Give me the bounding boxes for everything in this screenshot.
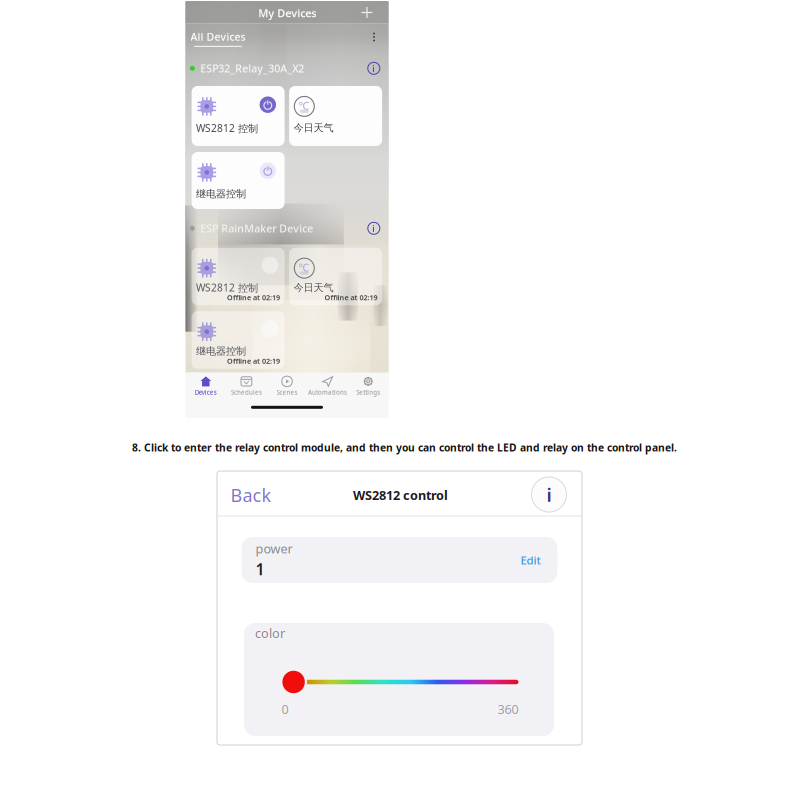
staticText: ℃ xyxy=(299,260,310,274)
staticText: color xyxy=(255,624,285,642)
staticText: Offline at 02:19 xyxy=(325,293,378,302)
button[interactable]: Device info xyxy=(368,222,380,234)
staticText: All Devices xyxy=(190,30,245,44)
button[interactable]: More options xyxy=(369,29,379,45)
staticText: i xyxy=(372,62,375,74)
button[interactable]: WS2812 控制 xyxy=(192,86,285,146)
staticText: 1 xyxy=(255,558,264,580)
button[interactable]: Scenes xyxy=(267,373,307,397)
button[interactable]: Hue handle xyxy=(280,668,307,695)
staticText: WS2812 control xyxy=(353,486,448,504)
staticText: WS2812 控制 xyxy=(196,121,258,135)
button[interactable]: Automations xyxy=(307,373,348,397)
button[interactable]: WS2812 控制 xyxy=(192,248,285,305)
button[interactable]: 继电器控制 xyxy=(192,311,285,369)
staticText: Offline at 02:19 xyxy=(227,356,280,366)
staticText: Scenes xyxy=(276,388,297,396)
staticText: Edit xyxy=(520,552,540,568)
button[interactable]: Device info xyxy=(368,62,380,74)
staticText: Schedules xyxy=(231,388,262,396)
staticText: Offline at 02:19 xyxy=(227,293,280,302)
staticText: 8. Click to enter the relay control modu… xyxy=(132,440,677,454)
staticText: My Devices xyxy=(258,6,316,20)
staticText: i xyxy=(372,222,375,234)
button[interactable]: Devices xyxy=(185,373,226,397)
staticText: 0 xyxy=(281,700,288,718)
staticText: Settings xyxy=(356,388,380,396)
staticText: Automations xyxy=(308,388,347,396)
staticText: 今日天气 xyxy=(294,281,334,294)
button[interactable]: Add device xyxy=(358,4,375,21)
staticText: Devices xyxy=(195,388,217,396)
button[interactable]: Edit xyxy=(517,549,543,571)
button[interactable]: ℃ xyxy=(289,248,382,305)
staticText: ℃ xyxy=(299,98,310,113)
staticText: 今日天气 xyxy=(294,122,334,134)
staticText: 继电器控制 xyxy=(196,345,246,357)
staticText: ESP32_Relay_30A_X2 xyxy=(200,61,304,75)
staticText: 继电器控制 xyxy=(196,188,246,200)
staticText: 360 xyxy=(497,700,518,718)
staticText: Back xyxy=(230,483,271,507)
staticText: i xyxy=(546,482,551,507)
button[interactable]: 继电器控制 xyxy=(192,152,285,209)
staticText: ESP RainMaker Device xyxy=(200,221,313,235)
button[interactable]: Device information xyxy=(531,477,566,512)
staticText: power xyxy=(255,540,292,557)
button[interactable]: All Devices xyxy=(190,30,245,47)
button[interactable]: ℃ xyxy=(289,86,382,146)
button[interactable]: Settings xyxy=(348,373,388,397)
staticText: WS2812 控制 xyxy=(196,281,258,294)
button[interactable]: Schedules xyxy=(226,373,267,397)
button[interactable]: Back xyxy=(226,479,275,511)
